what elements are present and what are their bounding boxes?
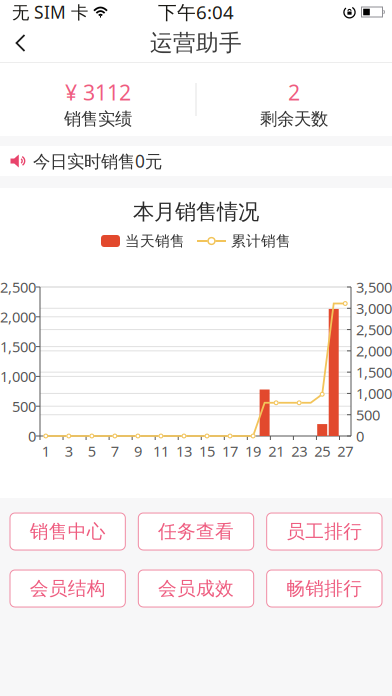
staticText: 500 <box>12 396 36 416</box>
staticText: 畅销排行 <box>286 577 362 600</box>
staticText: 9 <box>134 441 142 461</box>
staticText: 1,000 <box>0 367 36 386</box>
staticText: 500 <box>356 405 380 424</box>
staticText: 销售中心 <box>30 520 106 543</box>
staticText: 累计销售 <box>231 232 291 250</box>
staticText: 1,500 <box>356 362 392 382</box>
staticText: 今日实时销售0元 <box>33 149 162 172</box>
button[interactable]: 会员结构 <box>10 570 125 607</box>
staticText: 11 <box>153 441 169 461</box>
button[interactable]: Back <box>0 26 34 59</box>
button[interactable]: 销售中心 <box>10 513 125 550</box>
button[interactable]: 任务查看 <box>138 513 254 550</box>
staticText: 5 <box>88 441 96 461</box>
staticText: ¥ 3112 <box>65 78 131 106</box>
staticText: 23 <box>291 441 307 461</box>
staticText: 3,500 <box>356 277 392 297</box>
staticText: 13 <box>176 441 192 461</box>
staticText: 当天销售 <box>125 232 185 250</box>
staticText: 本月销售情况 <box>133 199 259 225</box>
staticText: 2,000 <box>356 341 392 361</box>
staticText: 无 SIM 卡 <box>12 0 88 23</box>
staticText: 会员成效 <box>158 577 234 600</box>
staticText: 2,500 <box>0 277 36 297</box>
staticText: 17 <box>222 441 238 461</box>
staticText: 1,500 <box>0 337 36 356</box>
staticText: 下午6:04 <box>158 0 234 24</box>
staticText: 任务查看 <box>158 520 234 543</box>
staticText: 3,000 <box>356 298 392 318</box>
staticText: 7 <box>111 441 119 461</box>
staticText: 25 <box>314 441 330 461</box>
staticText: 员工排行 <box>286 520 362 543</box>
staticText: 21 <box>268 441 284 461</box>
staticText: 0 <box>28 426 36 446</box>
staticText: 2,500 <box>356 320 392 339</box>
staticText: 运营助手 <box>150 29 242 57</box>
staticText: 2,000 <box>0 307 36 327</box>
button[interactable]: 员工排行 <box>267 513 382 550</box>
staticText: 0 <box>356 426 364 446</box>
staticText: 27 <box>337 441 353 461</box>
button[interactable]: 畅销排行 <box>267 570 382 607</box>
staticText: 15 <box>199 441 215 461</box>
staticText: 剩余天数 <box>260 108 328 130</box>
staticText: 会员结构 <box>30 577 106 600</box>
button[interactable]: 会员成效 <box>138 570 254 607</box>
staticText: 1,000 <box>356 384 392 403</box>
staticText: 2 <box>288 78 300 106</box>
staticText: 销售实绩 <box>64 108 132 130</box>
staticText: 1 <box>42 441 50 461</box>
staticText: 3 <box>65 441 73 461</box>
staticText: 19 <box>245 441 261 461</box>
